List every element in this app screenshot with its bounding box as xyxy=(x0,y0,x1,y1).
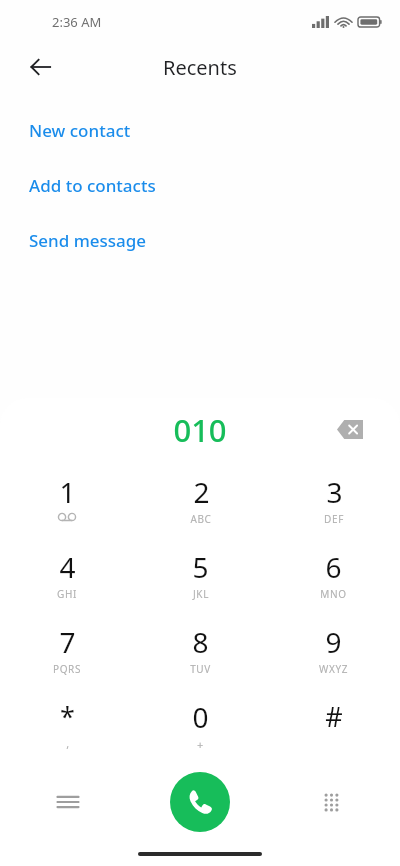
staticText: ABC xyxy=(190,512,212,526)
button[interactable]: 3 xyxy=(267,458,400,533)
button[interactable]: 9 xyxy=(267,608,400,683)
button[interactable]: Menu xyxy=(45,779,91,825)
button[interactable]: # xyxy=(267,683,400,758)
staticText: 0 xyxy=(192,698,209,736)
button[interactable]: 2 xyxy=(134,458,267,533)
button[interactable]: 1 xyxy=(0,458,134,533)
button[interactable]: 0 xyxy=(134,683,267,758)
staticText: + xyxy=(197,737,204,752)
staticText: 5 xyxy=(192,548,209,586)
button[interactable]: Keypad xyxy=(308,779,354,825)
button[interactable]: New contact xyxy=(0,103,400,158)
staticText: New contact xyxy=(29,119,131,142)
staticText: MNO xyxy=(320,587,347,601)
staticText: JKL xyxy=(193,587,209,601)
staticText: 6 xyxy=(325,548,342,586)
staticText: * xyxy=(60,698,75,735)
button[interactable]: Call xyxy=(170,772,230,832)
staticText: Recents xyxy=(163,54,237,81)
button[interactable]: * xyxy=(0,683,134,758)
button[interactable]: Backspace xyxy=(328,407,372,451)
staticText: TUV xyxy=(190,662,211,676)
staticText: 7 xyxy=(59,623,76,661)
staticText: 010 xyxy=(173,409,227,451)
button[interactable]: 4 xyxy=(0,533,134,608)
staticText: PQRS xyxy=(53,662,81,676)
staticText: 1 xyxy=(59,473,76,511)
button[interactable]: 6 xyxy=(267,533,400,608)
staticText: 2:36 AM xyxy=(52,13,102,31)
button[interactable]: 7 xyxy=(0,608,134,683)
staticText: , xyxy=(66,736,70,751)
staticText: GHI xyxy=(57,587,77,601)
staticText: WXYZ xyxy=(319,662,348,676)
staticText: 4 xyxy=(59,548,76,586)
staticText: 3 xyxy=(326,473,343,511)
button[interactable]: Add to contacts xyxy=(0,158,400,213)
button[interactable]: Back xyxy=(19,45,63,89)
staticText: 8 xyxy=(192,623,209,661)
staticText: Add to contacts xyxy=(29,174,156,197)
staticText: 9 xyxy=(325,623,342,661)
button[interactable]: Send message xyxy=(0,213,400,268)
staticText: DEF xyxy=(324,512,344,526)
staticText: Send message xyxy=(29,229,147,252)
button[interactable]: 5 xyxy=(134,533,267,608)
staticText: 2 xyxy=(193,473,210,511)
button[interactable]: 8 xyxy=(134,608,267,683)
staticText: # xyxy=(325,698,343,735)
